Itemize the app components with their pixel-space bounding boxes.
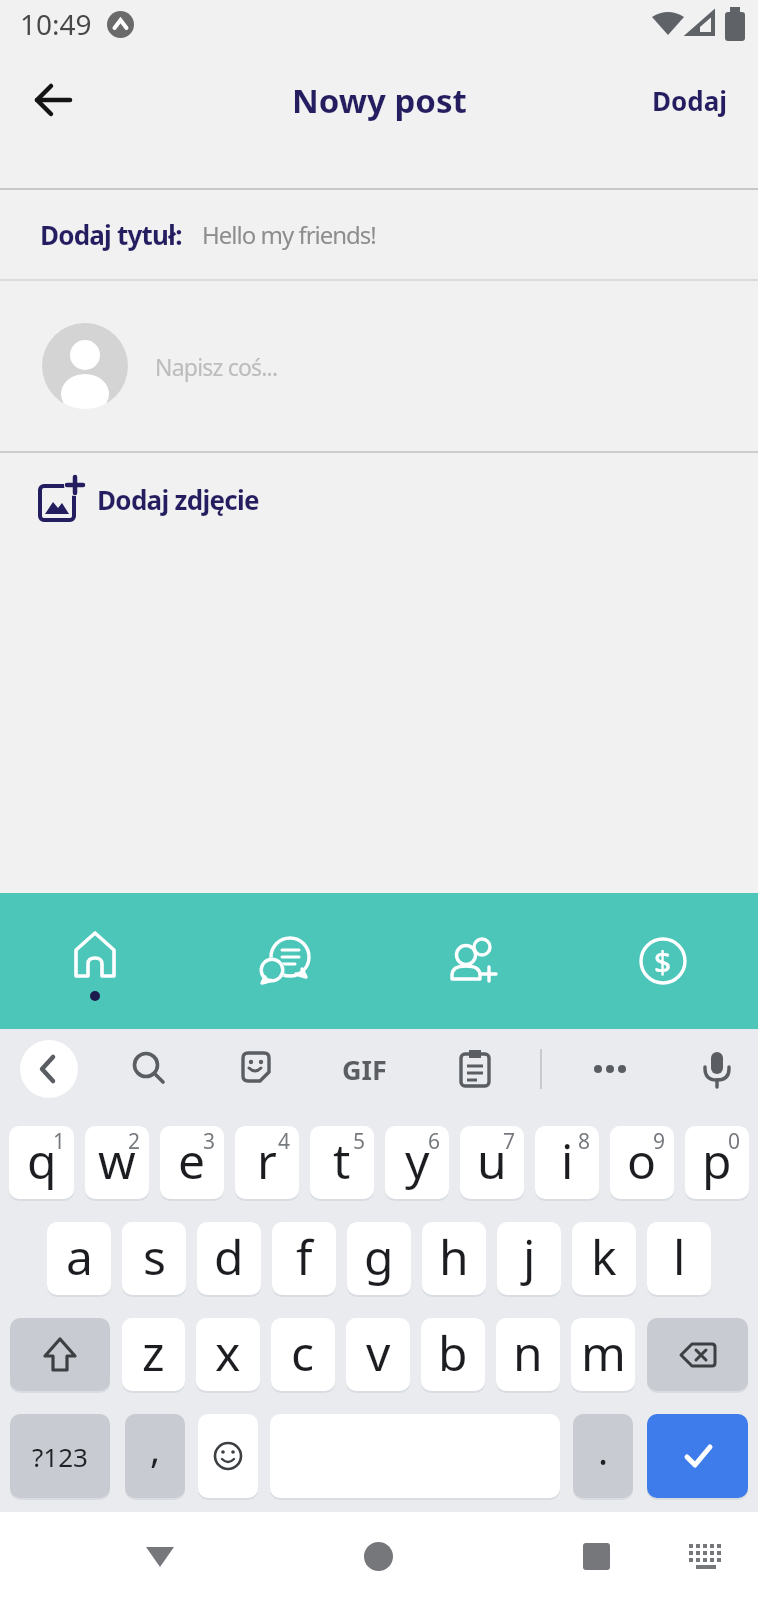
staticText: b xyxy=(438,1320,468,1385)
button[interactable]: o xyxy=(610,1126,674,1199)
staticText: ?123 xyxy=(32,1439,88,1474)
button[interactable]: h xyxy=(422,1222,486,1295)
staticText: 4 xyxy=(278,1127,291,1156)
button[interactable] xyxy=(189,893,378,1029)
button[interactable]: g xyxy=(347,1222,411,1295)
button[interactable]: p xyxy=(685,1126,749,1199)
button[interactable]: , xyxy=(125,1414,185,1498)
staticText: 3 xyxy=(203,1127,216,1156)
staticText: 7 xyxy=(503,1127,516,1156)
staticText: o xyxy=(627,1128,657,1193)
staticText: i xyxy=(561,1128,574,1193)
button[interactable]: y xyxy=(385,1126,449,1199)
button[interactable] xyxy=(229,1041,285,1097)
button[interactable]: Dodaj zdjęcie xyxy=(38,469,758,529)
button[interactable] xyxy=(582,1041,638,1097)
button[interactable]: x xyxy=(196,1318,260,1391)
staticText: Napisz coś... xyxy=(155,351,278,382)
button[interactable] xyxy=(678,1528,734,1584)
button[interactable]: b xyxy=(421,1318,485,1391)
button[interactable] xyxy=(0,893,189,1029)
button[interactable]: j xyxy=(497,1222,561,1295)
button[interactable]: Napisz coś... xyxy=(0,281,758,451)
staticText: 9 xyxy=(653,1127,666,1156)
staticText: 5 xyxy=(353,1127,366,1156)
staticText: j xyxy=(523,1224,536,1289)
staticText: x xyxy=(215,1320,241,1385)
button[interactable] xyxy=(647,1318,748,1391)
staticText: 2 xyxy=(128,1127,141,1156)
button[interactable] xyxy=(28,74,80,126)
staticText: l xyxy=(673,1224,686,1289)
button[interactable]: f xyxy=(272,1222,336,1295)
staticText: GIF xyxy=(342,1051,387,1088)
staticText: 6 xyxy=(428,1127,441,1156)
staticText: t xyxy=(333,1128,351,1193)
staticText: 1 xyxy=(53,1127,66,1156)
staticText: r xyxy=(257,1128,277,1193)
button[interactable]: r xyxy=(235,1126,299,1199)
staticText: , xyxy=(150,1422,161,1474)
button[interactable]: i xyxy=(535,1126,599,1199)
button[interactable] xyxy=(568,1528,624,1584)
staticText: Dodaj xyxy=(652,83,728,118)
button[interactable]: t xyxy=(310,1126,374,1199)
button[interactable] xyxy=(350,1528,406,1584)
staticText: h xyxy=(439,1224,469,1289)
staticText: Hello my friends! xyxy=(202,218,376,251)
button[interactable]: v xyxy=(346,1318,410,1391)
button[interactable]: u xyxy=(460,1126,524,1199)
staticText: f xyxy=(296,1224,313,1289)
button[interactable] xyxy=(132,1528,188,1584)
staticText: 10:49 xyxy=(20,5,92,43)
button[interactable] xyxy=(121,1041,177,1097)
button[interactable]: a xyxy=(47,1222,111,1295)
staticText: 8 xyxy=(578,1127,591,1156)
staticText: e xyxy=(178,1128,206,1193)
button[interactable] xyxy=(447,1041,503,1097)
staticText: z xyxy=(142,1320,165,1385)
staticText: $ xyxy=(654,941,672,982)
button[interactable]: . xyxy=(573,1414,633,1498)
staticText: g xyxy=(364,1224,394,1289)
button[interactable]: c xyxy=(271,1318,335,1391)
button[interactable]: n xyxy=(496,1318,560,1391)
button[interactable] xyxy=(20,1040,78,1098)
button[interactable]: d xyxy=(197,1222,261,1295)
staticText: q xyxy=(27,1128,57,1193)
staticText: k xyxy=(591,1224,617,1289)
staticText: 0 xyxy=(728,1127,741,1156)
button[interactable]: q xyxy=(9,1126,74,1199)
staticText: w xyxy=(98,1128,136,1193)
staticText: Dodaj tytuł: xyxy=(40,217,182,252)
staticText: s xyxy=(143,1224,166,1289)
staticText: p xyxy=(702,1128,732,1193)
button[interactable]: k xyxy=(572,1222,636,1295)
button[interactable]: z xyxy=(122,1318,185,1391)
staticText: c xyxy=(291,1320,315,1385)
button[interactable]: e xyxy=(160,1126,224,1199)
button[interactable]: GIF xyxy=(324,1041,404,1097)
staticText: y xyxy=(405,1128,430,1193)
staticText: v xyxy=(366,1320,391,1385)
staticText: u xyxy=(477,1128,507,1193)
button[interactable]: $ xyxy=(568,893,758,1029)
button[interactable]: Dodaj xyxy=(652,83,728,118)
staticText: m xyxy=(581,1320,626,1385)
button[interactable] xyxy=(198,1414,258,1498)
staticText: n xyxy=(513,1320,543,1385)
button[interactable]: w xyxy=(85,1126,149,1199)
button[interactable] xyxy=(647,1414,748,1498)
staticText: a xyxy=(66,1224,93,1289)
staticText: Nowy post xyxy=(292,78,467,123)
button[interactable] xyxy=(689,1041,745,1097)
button[interactable] xyxy=(10,1318,110,1391)
staticText: . xyxy=(598,1424,609,1476)
button[interactable]: l xyxy=(647,1222,711,1295)
button[interactable]: m xyxy=(571,1318,635,1391)
button[interactable]: s xyxy=(122,1222,186,1295)
button[interactable]: ?123 xyxy=(10,1414,110,1498)
button[interactable]: Dodaj tytuł: xyxy=(0,190,758,279)
button[interactable] xyxy=(378,893,568,1029)
